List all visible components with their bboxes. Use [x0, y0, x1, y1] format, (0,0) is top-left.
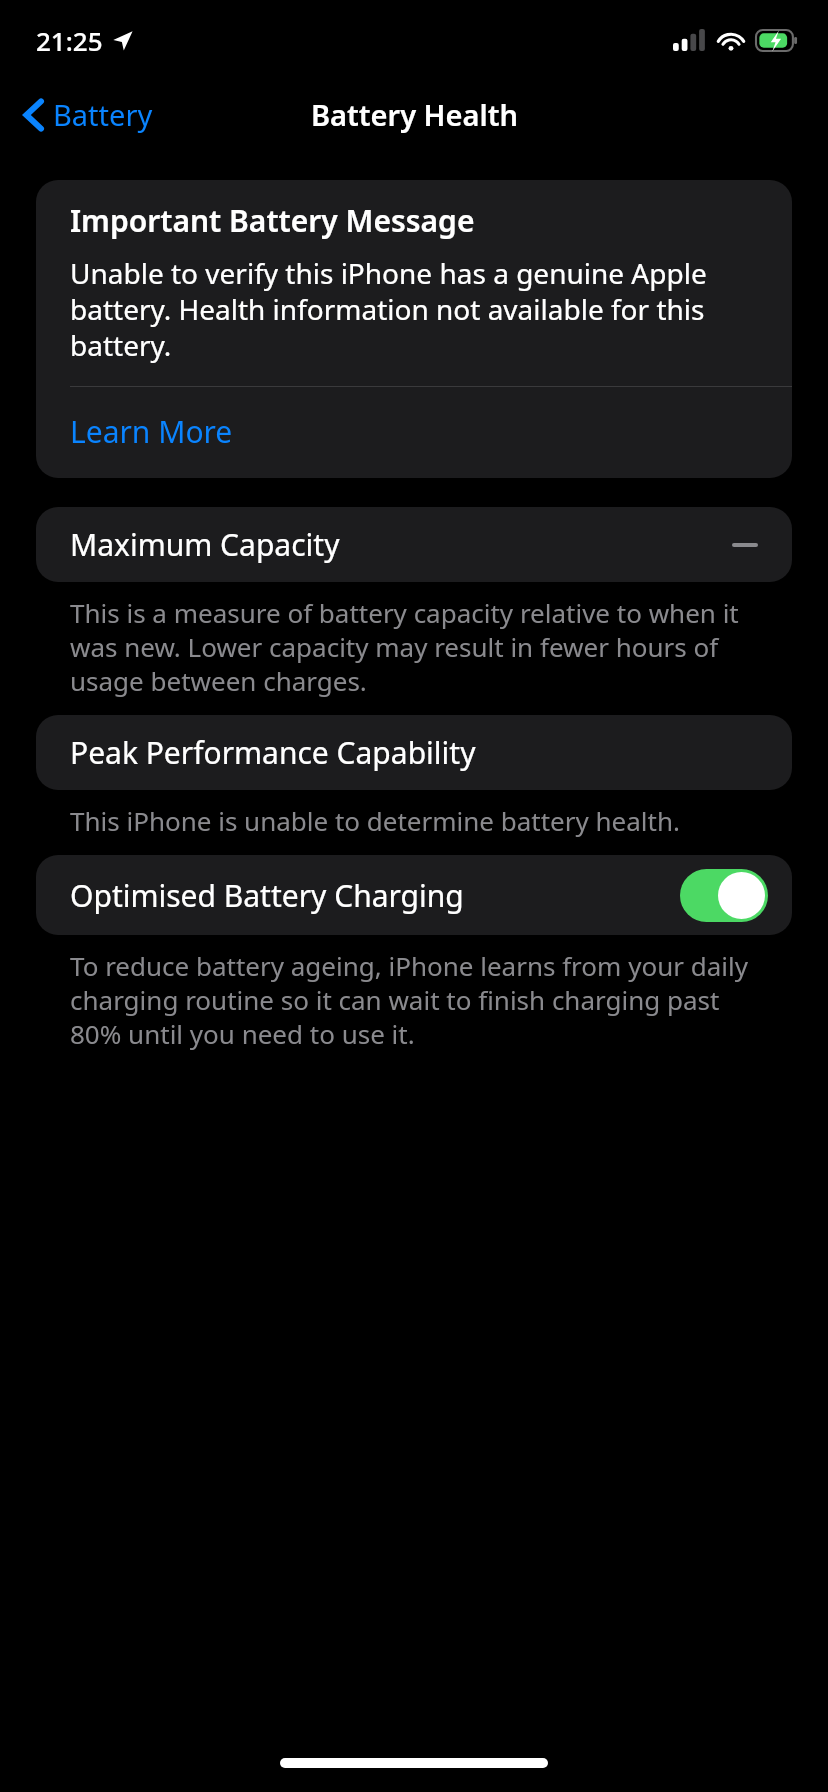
- staticText: Learn More: [70, 411, 233, 452]
- staticText: This is a measure of battery capacity re…: [70, 595, 758, 698]
- staticText: Optimised Battery Charging: [70, 875, 464, 916]
- button[interactable]: Peak Performance Capability: [36, 715, 792, 790]
- button[interactable]: Battery: [18, 89, 159, 140]
- staticText: This iPhone is unable to determine batte…: [70, 803, 680, 838]
- staticText: Battery: [53, 95, 153, 134]
- staticText: Unable to verify this iPhone has a genui…: [70, 254, 758, 364]
- staticText: 21:25: [36, 23, 103, 58]
- button[interactable]: Optimised Battery Charging toggle, on: [680, 869, 768, 922]
- staticText: Important Battery Message: [70, 200, 475, 241]
- staticText: To reduce battery ageing, iPhone learns …: [70, 948, 758, 1051]
- staticText: Peak Performance Capability: [70, 732, 476, 773]
- button[interactable]: Maximum Capacity: [36, 507, 792, 582]
- staticText: Battery Health: [311, 95, 518, 134]
- button[interactable]: Learn More: [36, 387, 792, 478]
- staticText: Maximum Capacity: [70, 524, 340, 565]
